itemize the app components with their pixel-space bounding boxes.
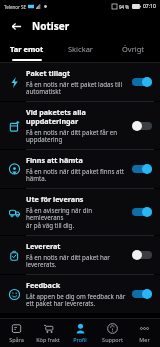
button[interactable]: Profil [64,319,96,347]
button[interactable]: Övrigt [107,39,160,59]
staticText: Få en notis när ditt paket får en uppdat… [26,128,118,144]
staticText: Skickar [68,44,93,54]
staticText: Övrigt [122,44,145,54]
button[interactable]: Support [96,319,128,347]
staticText: Ute för leverans [26,194,84,204]
staticText: 94 % [119,4,130,10]
button[interactable]: Paket tillagt [0,63,160,101]
staticText: Feedback [26,280,61,290]
staticText: Få en notis när ditt paket finns att häm… [26,167,124,183]
button[interactable]: Tar emot [0,39,54,59]
staticText: Telenor SE [4,4,26,10]
button[interactable]: On [131,76,153,88]
button[interactable]: Levererat [0,236,160,274]
staticText: 07:10 [143,3,156,10]
button[interactable]: Finns att hämta [0,150,160,188]
button[interactable]: On [131,288,153,300]
button[interactable]: Vid paketets alla uppdateringar [0,102,160,149]
staticText: Få en notis när ditt paket har levererat… [26,253,110,269]
button[interactable]: On [131,206,153,218]
button[interactable]: Mer [128,319,160,347]
button[interactable]: On [131,163,153,175]
staticText: Profil [73,336,87,343]
button[interactable]: Spåra [0,319,32,347]
button[interactable]: Off [131,120,153,132]
staticText: Finns att hämta [26,155,83,165]
staticText: Låt appen be dig om feedback när ett pak… [26,292,126,308]
button[interactable]: Köp frakt [32,319,64,347]
staticText: Paket tillagt [26,68,71,78]
staticText: Vid paketets alla uppdateringar [26,107,86,126]
staticText: Tar emot [10,44,44,54]
staticText: Få en avisering när din hemleverans är p… [26,206,127,230]
staticText: Support [102,336,123,343]
staticText: Mer [139,336,150,343]
button[interactable]: Off [131,249,153,261]
button[interactable]: Feedback [0,275,160,313]
staticText: Notiser [32,19,70,33]
staticText: Levererat [26,241,61,251]
staticText: Få en notis när ett paket ladas till aut… [26,80,123,96]
staticText: Köp frakt [36,336,60,343]
button[interactable]: Ute för leverans [0,189,160,235]
staticText: Spåra [9,336,24,343]
button[interactable]: Back [6,16,26,36]
button[interactable]: Skickar [54,39,107,59]
